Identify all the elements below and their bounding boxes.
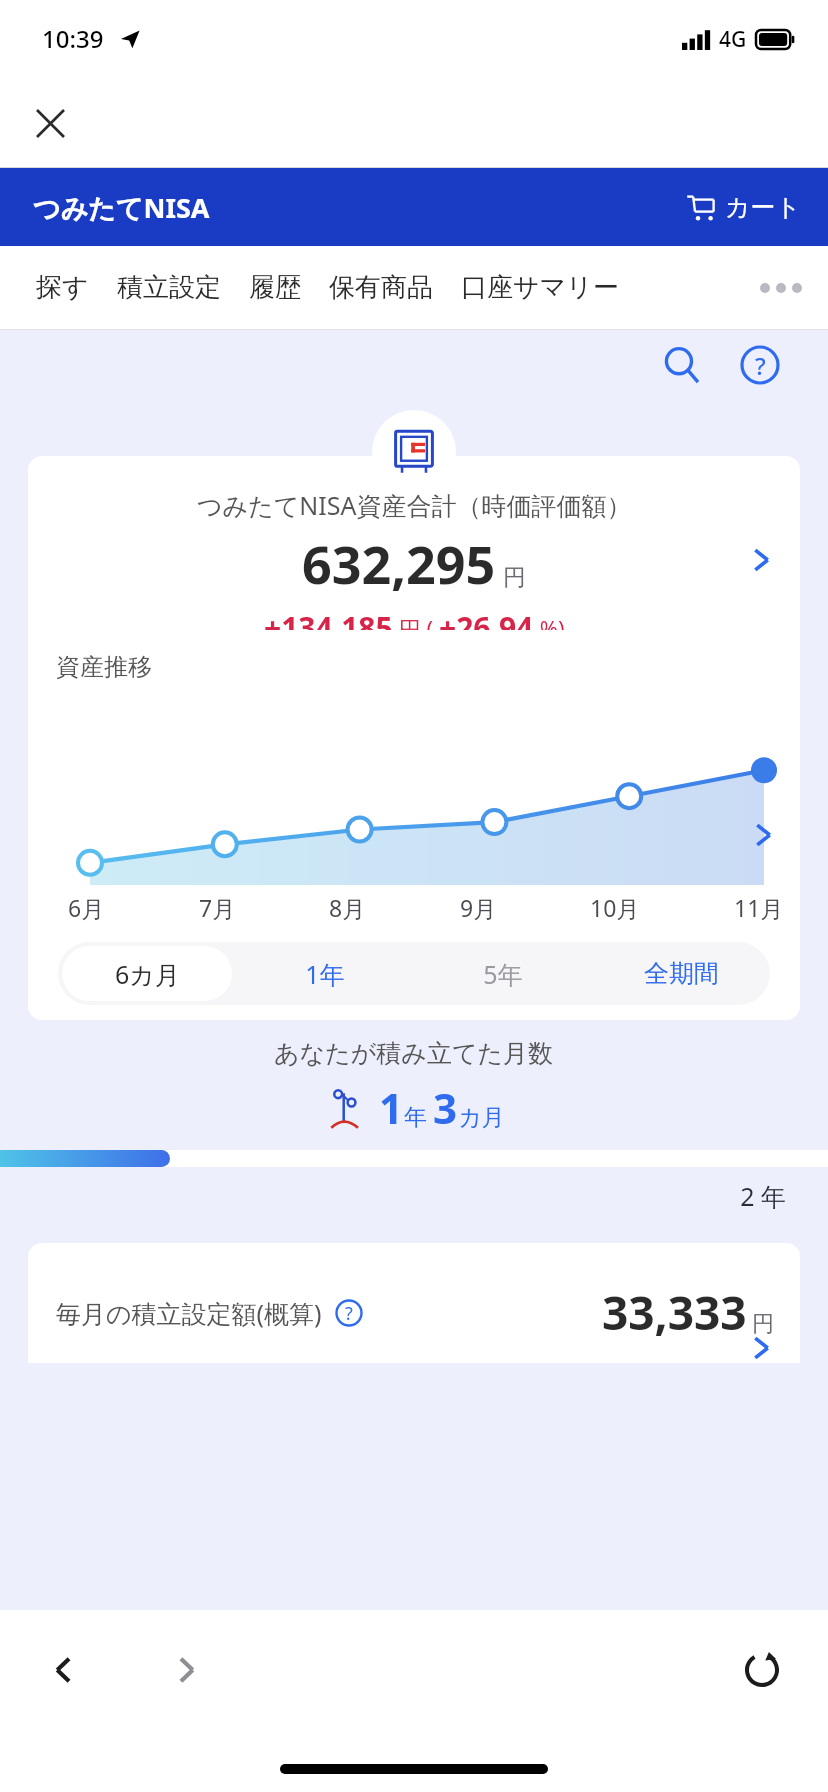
button[interactable]: 全期間 (596, 946, 766, 1001)
button[interactable]: More tabs (760, 283, 802, 293)
staticText: %) (534, 613, 565, 643)
staticText: 3 (433, 1079, 458, 1136)
staticText: 1 (379, 1079, 404, 1136)
button[interactable]: 保有商品 (315, 263, 447, 312)
button[interactable]: Search (652, 335, 712, 395)
button[interactable]: 積立設定 (103, 263, 235, 312)
staticText: あなたが積み立てた月数 (274, 1038, 554, 1069)
staticText: 33,333 (602, 1281, 747, 1344)
staticText: つみたてNISA (33, 189, 210, 226)
staticText: 10月 (590, 892, 640, 923)
button[interactable]: 口座サマリー (447, 263, 633, 312)
staticText: カ月 (458, 1103, 505, 1132)
staticText: 年 (404, 1103, 427, 1132)
button[interactable]: つみたてNISA資産合計（時価評価額） (28, 456, 800, 663)
button[interactable]: Help (730, 335, 790, 395)
staticText: 11月 (734, 892, 784, 923)
staticText: ? (755, 349, 766, 382)
staticText: 6月 (68, 892, 105, 923)
staticText: つみたてNISA資産合計（時価評価額） (197, 488, 632, 522)
button[interactable]: カート (686, 192, 802, 223)
button[interactable]: Forward (158, 1642, 214, 1698)
button[interactable]: 履歴 (235, 263, 315, 312)
staticText: 履歴 (249, 271, 301, 304)
staticText: 円 (503, 563, 526, 592)
button[interactable]: Help (334, 1298, 364, 1328)
staticText: 毎月の積立設定額(概算) (56, 1296, 322, 1330)
staticText: 保有商品 (329, 271, 433, 304)
staticText: 円 ( (393, 613, 439, 643)
staticText: 積立設定 (117, 271, 221, 304)
staticText: 4G (719, 25, 747, 54)
staticText: +26.94 (439, 607, 534, 648)
button[interactable]: Close (22, 95, 78, 151)
staticText: 6カ月 (115, 957, 180, 991)
staticText: 口座サマリー (461, 271, 619, 304)
staticText: 1年 (305, 957, 345, 991)
staticText: +134,185 (264, 607, 393, 648)
button[interactable]: Back (36, 1642, 92, 1698)
staticText: 8月 (329, 892, 366, 923)
button[interactable]: Reload (732, 1640, 792, 1700)
staticText: 632,295 (302, 528, 496, 599)
staticText: 7月 (199, 892, 236, 923)
staticText: 全期間 (644, 958, 719, 989)
staticText: 10:39 (42, 22, 104, 55)
staticText: ? (345, 1301, 353, 1326)
staticText: カート (725, 192, 802, 223)
staticText: 探す (36, 271, 89, 304)
staticText: 5年 (483, 957, 523, 991)
button[interactable]: 毎月の積立設定額(概算) (28, 1243, 800, 1363)
staticText: 円 (752, 1310, 774, 1338)
staticText: 資産推移 (56, 652, 152, 682)
staticText: 9月 (460, 892, 497, 923)
staticText: 2 年 (0, 1179, 786, 1213)
button[interactable]: 探す (22, 263, 103, 312)
button[interactable]: 1年 (240, 946, 410, 1001)
button[interactable]: 5年 (418, 946, 588, 1001)
button[interactable]: 6カ月 (62, 946, 232, 1001)
